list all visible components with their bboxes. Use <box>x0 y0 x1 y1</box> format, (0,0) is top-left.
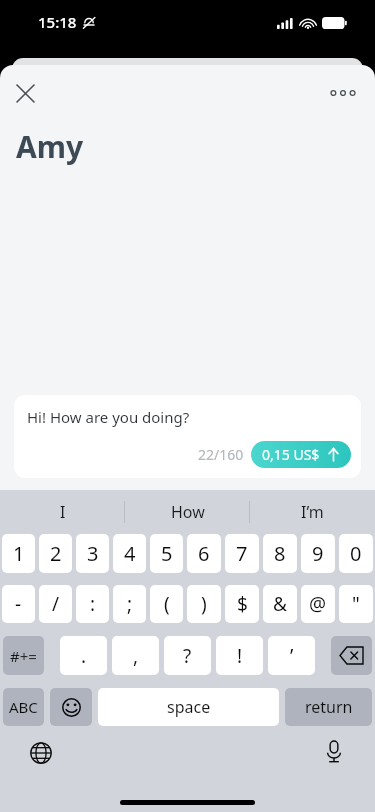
staticText: Hi! How are you doing? <box>27 407 190 427</box>
staticText: - <box>15 591 22 617</box>
button[interactable]: Change keyboard language <box>26 738 56 768</box>
staticText: ( <box>164 591 170 617</box>
staticText: : <box>90 591 96 617</box>
button[interactable]: How <box>125 490 250 534</box>
staticText: / <box>52 591 60 617</box>
button[interactable]: I <box>0 490 125 534</box>
button[interactable]: ! <box>216 636 263 675</box>
button[interactable]: 4 <box>113 534 146 573</box>
staticText: 1 <box>13 540 25 567</box>
button[interactable]: space <box>98 688 279 726</box>
staticText: 4 <box>124 540 136 567</box>
staticText: 5 <box>161 540 173 567</box>
button[interactable]: 0,15 US$ <box>251 441 351 468</box>
staticText: space <box>167 696 211 718</box>
button[interactable]: ABC <box>3 688 44 726</box>
button[interactable]: 5 <box>150 534 183 573</box>
staticText: & <box>273 591 287 617</box>
staticText: 0,15 US$ <box>262 445 320 464</box>
button[interactable]: Emoji <box>50 688 92 726</box>
staticText: #+= <box>10 646 37 666</box>
staticText: " <box>352 591 360 617</box>
staticText: ; <box>127 591 133 617</box>
button[interactable]: ; <box>113 585 146 623</box>
staticText: I <box>60 501 66 523</box>
staticText: ? <box>183 643 192 669</box>
staticText: ABC <box>9 697 38 717</box>
staticText: 22/160 <box>198 445 244 464</box>
staticText: $ <box>237 591 248 617</box>
button[interactable]: Hi! How are you doing? <box>14 395 361 478</box>
button[interactable]: Backspace <box>331 636 372 675</box>
button[interactable]: , <box>112 636 159 675</box>
button[interactable]: #+= <box>3 636 44 675</box>
button[interactable]: 9 <box>301 534 335 573</box>
staticText: ) <box>201 591 207 617</box>
staticText: 8 <box>274 540 286 567</box>
staticText: 3 <box>87 540 99 567</box>
staticText: ’ <box>290 643 294 669</box>
button[interactable]: @ <box>301 585 335 623</box>
button[interactable]: . <box>60 636 107 675</box>
button[interactable]: return <box>285 688 372 726</box>
button[interactable]: 1 <box>2 534 35 573</box>
button[interactable]: I’m <box>250 490 375 534</box>
button[interactable]: More options <box>323 77 363 109</box>
button[interactable]: ? <box>164 636 211 675</box>
button[interactable]: " <box>339 585 373 623</box>
staticText: 9 <box>312 540 324 567</box>
staticText: How <box>171 501 205 523</box>
button[interactable]: : <box>76 585 109 623</box>
button[interactable]: & <box>263 585 297 623</box>
button[interactable]: - <box>2 585 35 623</box>
button[interactable]: 3 <box>76 534 109 573</box>
staticText: 0 <box>350 540 362 567</box>
staticText: 2 <box>50 540 62 567</box>
button[interactable]: 7 <box>225 534 259 573</box>
staticText: Amy <box>16 126 84 167</box>
button[interactable]: 6 <box>187 534 221 573</box>
button[interactable]: / <box>39 585 72 623</box>
button[interactable]: ( <box>150 585 183 623</box>
button[interactable]: 0 <box>339 534 373 573</box>
staticText: @ <box>309 591 327 617</box>
staticText: I’m <box>301 501 324 523</box>
staticText: ! <box>237 643 243 669</box>
button[interactable]: 8 <box>263 534 297 573</box>
button[interactable]: ’ <box>268 636 315 675</box>
staticText: 6 <box>198 540 210 567</box>
button[interactable]: Voice input <box>319 737 349 767</box>
button[interactable]: 2 <box>39 534 72 573</box>
staticText: 7 <box>236 540 248 567</box>
button[interactable]: Close <box>9 77 41 109</box>
staticText: , <box>133 643 139 669</box>
button[interactable]: ) <box>187 585 221 623</box>
staticText: 15:18 <box>38 12 77 32</box>
button[interactable]: $ <box>225 585 259 623</box>
staticText: . <box>81 643 87 669</box>
staticText: return <box>305 696 353 718</box>
